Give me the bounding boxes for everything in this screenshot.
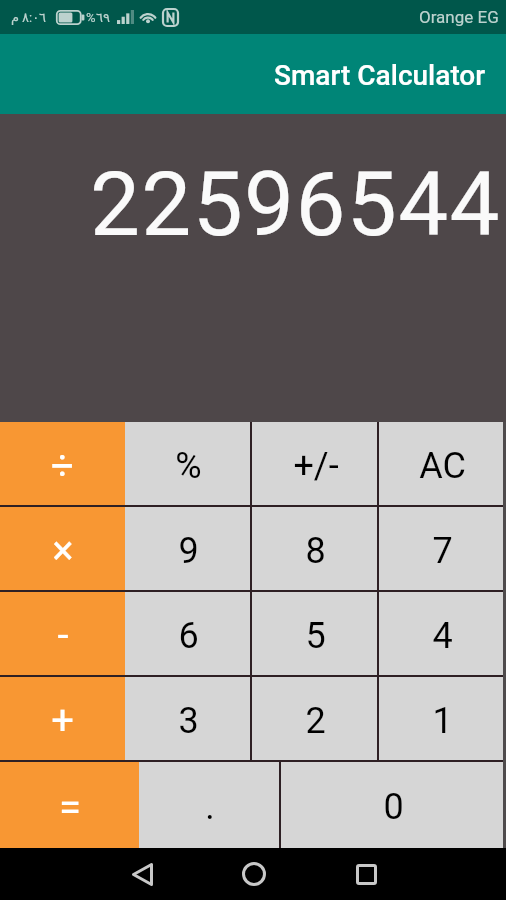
staticText: % bbox=[86, 10, 96, 25]
button[interactable]: 4 bbox=[379, 592, 506, 675]
button[interactable]: ÷ bbox=[0, 422, 125, 505]
button[interactable]: 1 bbox=[379, 677, 506, 760]
staticText: 8 bbox=[305, 530, 326, 572]
staticText: 4 bbox=[432, 615, 453, 657]
button[interactable]: 2 bbox=[252, 677, 379, 760]
staticText: 2 bbox=[305, 700, 326, 742]
button[interactable]: Home bbox=[230, 850, 278, 898]
button[interactable]: × bbox=[0, 507, 125, 590]
staticText: 22596544 bbox=[90, 152, 501, 256]
button[interactable]: 5 bbox=[252, 592, 379, 675]
staticText: AC bbox=[419, 445, 466, 487]
staticText: = bbox=[59, 784, 81, 831]
button[interactable]: % bbox=[125, 422, 252, 505]
button[interactable]: . bbox=[139, 762, 281, 848]
button[interactable]: 9 bbox=[125, 507, 252, 590]
button[interactable]: Recents bbox=[342, 850, 390, 898]
staticText: Orange EG bbox=[419, 7, 499, 27]
button[interactable]: 3 bbox=[125, 677, 252, 760]
button[interactable]: Back bbox=[118, 850, 166, 898]
button[interactable]: 0 bbox=[281, 762, 506, 848]
button[interactable]: Smart Calculator bbox=[0, 34, 506, 114]
button[interactable]: 7 bbox=[379, 507, 506, 590]
staticText: ٨:٠٦ bbox=[22, 10, 47, 25]
staticText: . bbox=[205, 786, 215, 828]
staticText: م bbox=[11, 10, 20, 25]
staticText: 7 bbox=[432, 530, 453, 572]
button[interactable]: = bbox=[0, 762, 139, 848]
staticText: + bbox=[51, 697, 74, 744]
button[interactable]: AC bbox=[379, 422, 506, 505]
staticText: ÷ bbox=[51, 442, 74, 489]
staticText: 0 bbox=[383, 786, 404, 828]
staticText: 9 bbox=[178, 530, 199, 572]
staticText: ٦٩ bbox=[96, 10, 110, 25]
button[interactable]: - bbox=[0, 592, 125, 675]
staticText: 5 bbox=[305, 615, 326, 657]
staticText: % bbox=[175, 445, 202, 487]
staticText: Smart Calculator bbox=[274, 59, 486, 92]
button[interactable]: 6 bbox=[125, 592, 252, 675]
staticText: 1 bbox=[432, 700, 453, 742]
staticText: - bbox=[57, 612, 69, 659]
button[interactable]: +/- bbox=[252, 422, 379, 505]
button[interactable]: 8 bbox=[252, 507, 379, 590]
staticText: +/- bbox=[293, 445, 339, 487]
button[interactable]: + bbox=[0, 677, 125, 760]
staticText: × bbox=[52, 527, 74, 574]
staticText: 6 bbox=[178, 615, 199, 657]
staticText: 3 bbox=[178, 700, 199, 742]
